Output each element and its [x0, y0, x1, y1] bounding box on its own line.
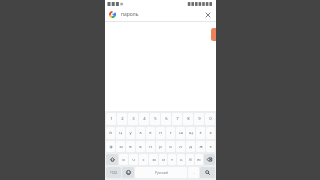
button[interactable]: е — [146, 127, 155, 139]
button[interactable]: г — [166, 127, 175, 139]
button[interactable]: 3 — [128, 113, 138, 125]
button[interactable]: м — [149, 154, 158, 165]
button[interactable]: э — [206, 141, 215, 152]
button[interactable]: д — [186, 141, 195, 152]
staticText: 2 — [121, 116, 124, 122]
button[interactable]: к — [136, 127, 145, 139]
staticText: ы — [119, 144, 123, 150]
button[interactable]: ж — [196, 141, 205, 152]
staticText: б — [189, 157, 192, 163]
button[interactable]: 6 — [161, 113, 171, 125]
staticText: с — [142, 157, 145, 163]
button[interactable]: пароль — [105, 8, 216, 21]
staticText: к — [139, 130, 142, 136]
staticText: е — [149, 130, 152, 136]
button[interactable]: н — [156, 127, 165, 139]
staticText: у — [129, 130, 132, 136]
staticText: . — [193, 170, 195, 176]
button[interactable]: а — [136, 141, 145, 152]
staticText: х — [209, 130, 212, 136]
button[interactable]: у — [126, 127, 135, 139]
staticText: 9 — [198, 116, 201, 122]
staticText: ж — [199, 144, 203, 150]
button[interactable]: Emoji — [122, 167, 134, 178]
staticText: л — [179, 144, 182, 150]
staticText: ь — [180, 157, 183, 163]
button[interactable]: Русский — [135, 167, 187, 178]
button[interactable]: 8 — [183, 113, 193, 125]
staticText: п — [149, 144, 152, 150]
staticText: р — [159, 144, 162, 150]
staticText: а — [139, 144, 142, 150]
button[interactable]: и — [159, 154, 167, 165]
staticText: ю — [197, 157, 201, 163]
button[interactable]: ф — [106, 141, 115, 152]
button[interactable]: 1 — [106, 113, 116, 125]
staticText: ч — [132, 157, 135, 163]
button[interactable]: о — [166, 141, 175, 152]
button[interactable]: ю — [195, 154, 203, 165]
staticText: я — [122, 157, 125, 163]
staticText: э — [209, 144, 212, 150]
staticText: н — [159, 130, 162, 136]
button[interactable]: 2 — [117, 113, 127, 125]
staticText: з — [199, 130, 202, 136]
staticText: 8 — [187, 116, 190, 122]
staticText: й — [109, 130, 112, 136]
button[interactable]: Shift — [106, 154, 118, 165]
button[interactable]: ш — [176, 127, 185, 139]
button[interactable]: 7 — [172, 113, 182, 125]
staticText: пароль — [121, 11, 203, 18]
button[interactable]: р — [156, 141, 165, 152]
staticText: 5 — [154, 116, 157, 122]
staticText: т — [171, 157, 173, 163]
staticText: 6 — [165, 116, 168, 122]
staticText: д — [189, 144, 192, 150]
button[interactable]: п — [146, 141, 155, 152]
button[interactable]: ц — [116, 127, 125, 139]
staticText: щ — [189, 130, 193, 136]
button[interactable]: в — [126, 141, 135, 152]
button[interactable]: 4 — [139, 113, 149, 125]
button[interactable]: Clear search — [203, 10, 212, 19]
staticText: ?123 — [110, 171, 117, 175]
button[interactable]: я — [119, 154, 128, 165]
button[interactable]: 0 — [205, 113, 215, 125]
button[interactable]: ч — [129, 154, 138, 165]
staticText: и — [162, 157, 165, 163]
staticText: в — [129, 144, 132, 150]
button[interactable]: Search — [200, 167, 215, 178]
button[interactable]: Side tab — [211, 28, 216, 41]
staticText: ц — [119, 130, 122, 136]
button[interactable]: й — [106, 127, 115, 139]
button[interactable]: 9 — [194, 113, 204, 125]
staticText: ш — [179, 130, 183, 136]
staticText: 4 — [143, 116, 146, 122]
button[interactable]: б — [186, 154, 194, 165]
staticText: 7 — [176, 116, 179, 122]
button[interactable]: х — [206, 127, 215, 139]
button[interactable]: щ — [186, 127, 195, 139]
button[interactable]: 5 — [150, 113, 160, 125]
staticText: 1 — [110, 116, 113, 122]
staticText: м — [152, 157, 156, 163]
staticText: ф — [109, 144, 113, 150]
button[interactable]: т — [168, 154, 176, 165]
button[interactable]: ы — [116, 141, 125, 152]
button[interactable]: з — [196, 127, 205, 139]
staticText: о — [169, 144, 172, 150]
button[interactable]: ?123 — [106, 167, 121, 178]
button[interactable]: с — [139, 154, 148, 165]
staticText: 3 — [132, 116, 135, 122]
button[interactable]: ь — [177, 154, 185, 165]
staticText: Русский — [155, 170, 168, 175]
button[interactable]: Backspace — [204, 154, 215, 165]
staticText: 0 — [209, 116, 212, 122]
staticText: г — [170, 130, 172, 136]
button[interactable]: л — [176, 141, 185, 152]
